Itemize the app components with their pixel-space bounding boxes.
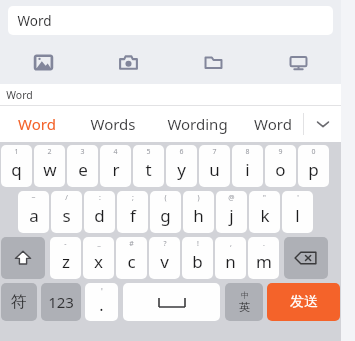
- staticText: s: [62, 204, 71, 227]
- staticText: e: [78, 158, 88, 181]
- button[interactable]: Backspace: [284, 237, 328, 279]
- staticText: b: [192, 250, 203, 273]
- button[interactable]: _: [83, 237, 114, 279]
- staticText: v: [160, 250, 169, 273]
- button[interactable]: ': [282, 191, 313, 233]
- staticText: 4: [113, 147, 118, 157]
- staticText: y: [177, 158, 186, 181]
- staticText: p: [308, 158, 319, 181]
- button[interactable]: 6: [166, 145, 197, 187]
- staticText: 英: [239, 300, 250, 314]
- button[interactable]: 2: [34, 145, 65, 187]
- staticText: h: [193, 204, 204, 227]
- button[interactable]: ~: [18, 191, 49, 233]
- staticText: 123: [48, 292, 74, 312]
- button[interactable]: Shift: [1, 237, 45, 279]
- button[interactable]: 123: [41, 283, 81, 321]
- staticText: z: [62, 250, 70, 273]
- staticText: _: [97, 239, 101, 249]
- button[interactable]: ": [249, 191, 280, 233]
- button[interactable]: 9: [265, 145, 296, 187]
- button[interactable]: ?: [149, 237, 180, 279]
- staticText: n: [225, 250, 236, 273]
- button[interactable]: 符: [1, 283, 37, 321]
- staticText: 中: [241, 290, 249, 300]
- staticText: ": [263, 193, 266, 203]
- button[interactable]: #: [116, 237, 147, 279]
- staticText: ?: [163, 239, 167, 249]
- button[interactable]: 7: [199, 145, 230, 187]
- staticText: g: [160, 204, 171, 227]
- staticText: 9: [278, 147, 283, 157]
- staticText: ': [297, 193, 299, 203]
- staticText: j: [229, 204, 234, 227]
- button[interactable]: Screen: [256, 42, 341, 82]
- button[interactable]: ): [183, 191, 214, 233]
- staticText: x: [94, 250, 103, 273]
- button[interactable]: 中: [225, 283, 263, 321]
- button[interactable]: 1: [1, 145, 32, 187]
- staticText: m: [256, 250, 272, 273]
- staticText: 8: [245, 147, 250, 157]
- staticText: o: [275, 158, 286, 181]
- staticText: :: [99, 193, 101, 203]
- button[interactable]: Word: [8, 6, 333, 35]
- staticText: Wording: [167, 114, 228, 134]
- button[interactable]: -: [50, 237, 81, 279]
- button[interactable]: 5: [133, 145, 164, 187]
- staticText: 1: [14, 147, 19, 157]
- staticText: ~: [31, 193, 36, 203]
- staticText: Word: [18, 114, 56, 134]
- button[interactable]: Camera: [86, 42, 171, 82]
- staticText: (: [164, 193, 167, 203]
- staticText: d: [94, 204, 105, 227]
- button[interactable]: ': [85, 283, 118, 321]
- button[interactable]: More suggestions: [304, 106, 341, 142]
- staticText: 发送: [290, 293, 318, 311]
- staticText: 5: [146, 147, 151, 157]
- button[interactable]: !: [182, 237, 213, 279]
- staticText: 符: [11, 292, 27, 312]
- staticText: c: [127, 250, 136, 273]
- button[interactable]: Send: [267, 283, 340, 321]
- staticText: 0: [311, 147, 316, 157]
- button[interactable]: Photos: [0, 42, 86, 82]
- staticText: u: [209, 158, 220, 181]
- staticText: f: [130, 204, 136, 227]
- staticText: 6: [179, 147, 184, 157]
- button[interactable]: (: [150, 191, 181, 233]
- staticText: /: [65, 193, 68, 203]
- button[interactable]: 4: [100, 145, 131, 187]
- staticText: ,: [230, 239, 232, 249]
- staticText: q: [11, 158, 22, 181]
- staticText: ;: [132, 193, 134, 203]
- button[interactable]: @: [216, 191, 247, 233]
- button[interactable]: :: [84, 191, 115, 233]
- button[interactable]: Word: [243, 106, 303, 142]
- staticText: k: [260, 204, 270, 227]
- staticText: .: [263, 239, 265, 249]
- button[interactable]: Word: [0, 106, 74, 142]
- button[interactable]: ;: [117, 191, 148, 233]
- button[interactable]: Wording: [151, 106, 243, 142]
- button[interactable]: Words: [74, 106, 151, 142]
- staticText: w: [43, 158, 57, 181]
- staticText: 7: [212, 147, 217, 157]
- staticText: i: [245, 158, 250, 181]
- staticText: Words: [90, 114, 136, 134]
- button[interactable]: ,: [215, 237, 246, 279]
- staticText: r: [112, 158, 120, 181]
- button[interactable]: 8: [232, 145, 263, 187]
- button[interactable]: /: [51, 191, 82, 233]
- staticText: ': [101, 286, 103, 297]
- button[interactable]: .: [248, 237, 279, 279]
- button[interactable]: 3: [67, 145, 98, 187]
- staticText: @: [228, 193, 235, 203]
- button[interactable]: Files: [171, 42, 256, 82]
- staticText: 3: [80, 147, 85, 157]
- button[interactable]: 0: [298, 145, 329, 187]
- button[interactable]: Space: [123, 283, 220, 321]
- staticText: Word: [17, 12, 52, 30]
- staticText: l: [295, 204, 300, 227]
- staticText: !: [197, 239, 199, 249]
